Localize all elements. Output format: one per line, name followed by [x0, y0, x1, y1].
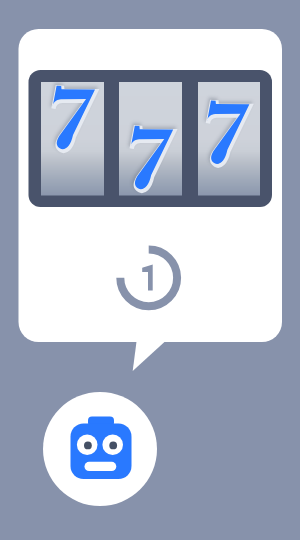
- button[interactable]: Open lucky sevens message: [19, 29, 283, 342]
- button[interactable]: Spin the reels: [29, 70, 273, 207]
- button[interactable]: Countdown, 1 second remaining: [116, 245, 182, 311]
- button[interactable]: Bot avatar: [43, 392, 157, 506]
